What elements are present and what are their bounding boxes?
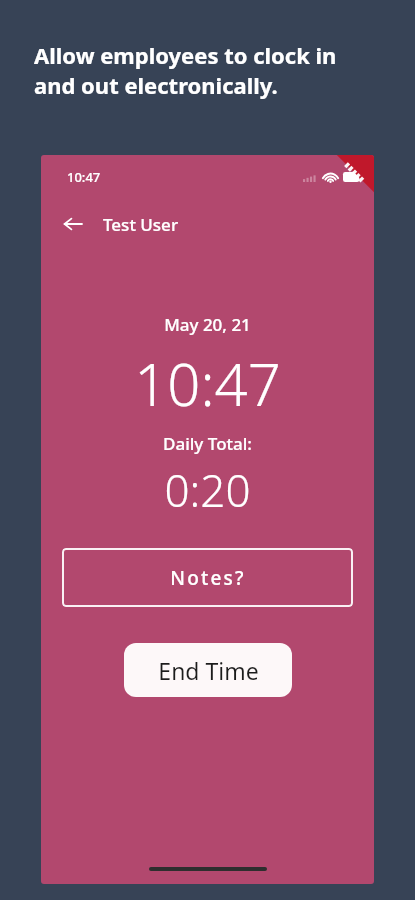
button[interactable]: End Time — [124, 643, 292, 697]
staticText: 10:47 — [67, 168, 101, 186]
staticText: Allow employees to clock in — [34, 40, 337, 70]
staticText: Notes? — [170, 565, 246, 591]
button[interactable]: Notes? — [62, 548, 353, 607]
button[interactable]: Back — [55, 206, 91, 242]
staticText: Daily Total: — [163, 432, 252, 455]
staticText: and out electronically. — [34, 70, 278, 100]
staticText: Test User — [103, 213, 179, 236]
staticText: May 20, 21 — [164, 313, 251, 336]
staticText: 10:47 — [134, 344, 281, 423]
staticText: End Time — [158, 655, 259, 686]
staticText: 0:20 — [164, 460, 251, 520]
